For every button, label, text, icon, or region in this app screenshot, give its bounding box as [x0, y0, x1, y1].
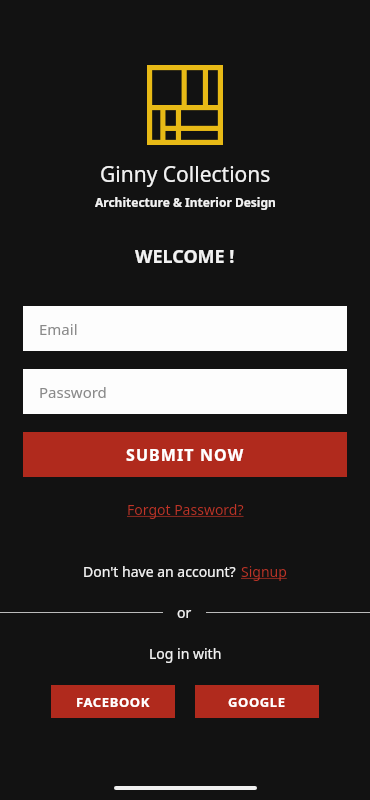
staticText: GOOGLE	[228, 693, 286, 711]
staticText: Forgot Password?	[127, 500, 244, 519]
button[interactable]: Password	[23, 369, 347, 414]
staticText: Don't have an account?	[83, 562, 236, 581]
staticText: WELCOME !	[135, 244, 235, 269]
button[interactable]: GOOGLE	[195, 685, 319, 718]
button[interactable]: FACEBOOK	[51, 685, 175, 718]
button[interactable]: Email	[23, 306, 347, 351]
staticText: Ginny Collections	[100, 160, 271, 189]
staticText: Log in with	[149, 644, 222, 663]
button[interactable]: SUBMIT NOW	[23, 432, 347, 477]
staticText: Architecture & Interior Design	[95, 194, 276, 210]
staticText: or	[177, 603, 192, 622]
staticText: Password	[39, 382, 107, 402]
staticText: Email	[39, 319, 78, 339]
staticText: Signup	[241, 562, 287, 581]
button[interactable]: Forgot Password?	[121, 498, 250, 521]
staticText: FACEBOOK	[76, 693, 150, 711]
other: Home indicator	[114, 786, 257, 790]
staticText: SUBMIT NOW	[126, 444, 245, 466]
button[interactable]: Signup	[241, 562, 287, 581]
